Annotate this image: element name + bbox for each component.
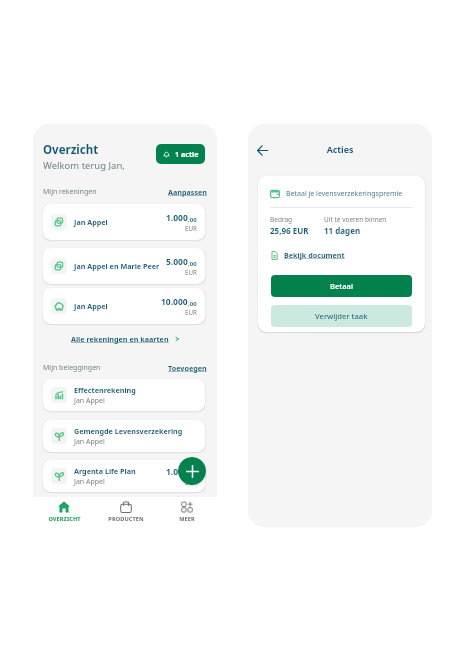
button[interactable]: Jan Appel: [43, 204, 205, 240]
button[interactable]: Alle rekeningen en kaarten: [33, 334, 217, 344]
staticText: PRODUCTEN: [108, 515, 144, 523]
button[interactable]: Aanpassen: [168, 187, 207, 197]
staticText: Jan Appel: [74, 301, 108, 311]
button[interactable]: Argenta Life Plan: [43, 460, 205, 492]
button[interactable]: Bekijk document: [270, 250, 345, 260]
button[interactable]: MEER: [156, 497, 217, 527]
staticText: ,00: [188, 470, 197, 478]
staticText: Jan Appel: [74, 477, 105, 487]
staticText: Verwijder taak: [315, 311, 368, 321]
button[interactable]: 1 actie: [156, 144, 205, 164]
staticText: Jan Appel en Marie Peer: [74, 261, 160, 271]
staticText: Aanpassen: [168, 187, 207, 197]
staticText: Jan Appel: [74, 437, 105, 447]
staticText: Betaal: [330, 281, 353, 291]
staticText: Mijn rekeningen: [43, 187, 97, 197]
staticText: Alle rekeningen en kaarten: [71, 334, 169, 344]
staticText: 10.000: [161, 296, 188, 308]
staticText: Jan Appel: [74, 217, 108, 227]
staticText: Betaal je levensverzekeringspremie: [286, 189, 403, 199]
button[interactable]: Toevoegen: [168, 363, 207, 373]
staticText: ,00: [188, 300, 197, 308]
button[interactable]: OVERZICHT: [33, 497, 95, 527]
staticText: Effectenrekening: [74, 385, 136, 395]
staticText: Gemengde Levensverzekering: [74, 426, 183, 436]
staticText: EUR: [185, 268, 197, 276]
staticText: Toevoegen: [168, 363, 207, 373]
button[interactable]: Terug: [252, 140, 272, 160]
staticText: Argenta Life Plan: [74, 466, 136, 476]
button[interactable]: Betaal: [271, 275, 412, 297]
staticText: Bedrag: [270, 215, 293, 224]
staticText: Welkom terug Jan,: [43, 159, 125, 172]
staticText: Uit te voeren binnen: [324, 215, 387, 224]
staticText: ,00: [188, 260, 197, 268]
staticText: Overzicht: [43, 142, 99, 158]
button[interactable]: Verwijder taak: [271, 305, 412, 327]
staticText: Jan Appel: [74, 396, 105, 406]
button[interactable]: Toevoegen: [178, 457, 206, 485]
staticText: Mijn beleggingen: [43, 363, 101, 373]
button[interactable]: Effectenrekening: [43, 379, 205, 411]
staticText: 1 actie: [175, 149, 199, 159]
staticText: EUR: [185, 478, 197, 486]
staticText: Bekijk document: [284, 250, 345, 260]
staticText: MEER: [179, 515, 195, 523]
button[interactable]: Jan Appel: [43, 288, 205, 324]
staticText: 1.000: [166, 212, 188, 224]
staticText: EUR: [185, 308, 197, 316]
staticText: ,00: [188, 216, 197, 224]
button[interactable]: Jan Appel en Marie Peer: [43, 248, 205, 284]
staticText: OVERZICHT: [48, 515, 81, 523]
staticText: Acties: [248, 144, 432, 156]
staticText: 11 dagen: [324, 225, 361, 236]
staticText: 1.000: [166, 466, 188, 478]
staticText: EUR: [185, 224, 197, 232]
staticText: 5.000: [166, 256, 188, 268]
button[interactable]: Gemengde Levensverzekering: [43, 420, 205, 452]
button[interactable]: PRODUCTEN: [95, 497, 156, 527]
staticText: 25,96 EUR: [270, 225, 309, 236]
